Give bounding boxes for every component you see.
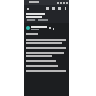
button[interactable]: More options	[52, 27, 55, 30]
button[interactable]: Mark unread	[57, 6, 62, 11]
button[interactable]: Delete	[51, 6, 56, 11]
button[interactable]: Reply	[48, 26, 52, 30]
button[interactable]: Archive	[45, 6, 50, 11]
button[interactable]: More	[63, 6, 68, 11]
button[interactable]: Back	[25, 6, 30, 11]
